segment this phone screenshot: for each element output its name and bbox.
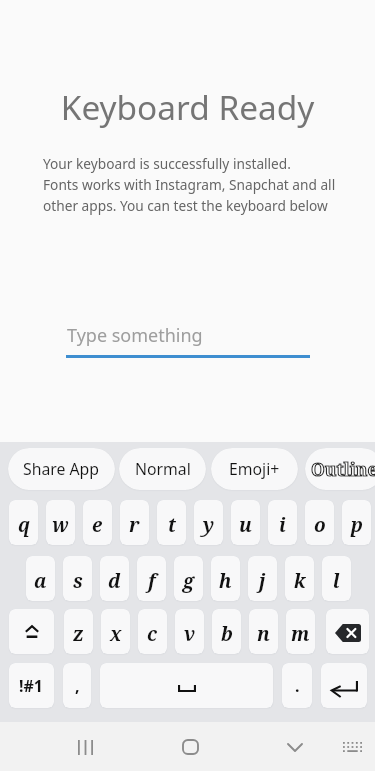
- staticText: Type something: [67, 323, 203, 348]
- button[interactable]: k: [285, 556, 314, 601]
- staticText: h: [219, 568, 232, 594]
- staticText: Keyboard Ready: [0, 84, 375, 129]
- button[interactable]: f: [137, 556, 166, 601]
- staticText: f: [148, 568, 156, 594]
- staticText: x: [110, 621, 122, 647]
- staticText: Outline: [311, 457, 375, 481]
- button[interactable]: h: [211, 556, 240, 601]
- staticText: .: [295, 675, 300, 697]
- button[interactable]: d: [100, 556, 129, 601]
- button[interactable]: Share App: [8, 448, 115, 490]
- button[interactable]: Hide keyboard: [271, 722, 319, 771]
- button[interactable]: Shift: [9, 609, 54, 654]
- staticText: p: [351, 512, 363, 538]
- button[interactable]: a: [26, 556, 55, 601]
- staticText: Normal: [135, 458, 191, 480]
- button[interactable]: v: [175, 609, 204, 654]
- staticText: Outline: [311, 457, 375, 481]
- staticText: e: [92, 512, 103, 538]
- button[interactable]: Space: [100, 663, 273, 708]
- button[interactable]: y: [194, 500, 223, 545]
- staticText: !#1: [19, 675, 44, 697]
- button[interactable]: Normal: [119, 448, 206, 490]
- staticText: l: [333, 568, 340, 594]
- button[interactable]: p: [342, 500, 371, 545]
- staticText: ,: [75, 675, 80, 697]
- staticText: n: [257, 621, 270, 647]
- button[interactable]: Home: [166, 722, 214, 771]
- staticText: j: [259, 568, 266, 594]
- button[interactable]: u: [231, 500, 260, 545]
- button[interactable]: j: [248, 556, 277, 601]
- button[interactable]: c: [138, 609, 167, 654]
- staticText: y: [203, 512, 215, 538]
- staticText: g: [183, 568, 195, 594]
- button[interactable]: i: [268, 500, 297, 545]
- button[interactable]: Recents: [61, 722, 109, 771]
- button[interactable]: Backspace: [326, 609, 369, 654]
- staticText: d: [108, 568, 121, 594]
- staticText: t: [168, 512, 176, 538]
- button[interactable]: z: [64, 609, 93, 654]
- staticText: b: [221, 621, 233, 647]
- button[interactable]: !#1: [9, 663, 54, 708]
- button[interactable]: .: [282, 663, 312, 708]
- staticText: z: [73, 621, 84, 647]
- button[interactable]: Enter: [321, 663, 367, 708]
- staticText: r: [129, 512, 140, 538]
- button[interactable]: m: [286, 609, 315, 654]
- staticText: s: [73, 568, 83, 594]
- staticText: k: [294, 568, 306, 594]
- button[interactable]: Outline: [305, 448, 375, 490]
- button[interactable]: n: [249, 609, 278, 654]
- staticText: c: [147, 621, 158, 647]
- button[interactable]: e: [83, 500, 112, 545]
- button[interactable]: b: [212, 609, 241, 654]
- staticText: u: [239, 512, 252, 538]
- staticText: o: [314, 512, 326, 538]
- button[interactable]: s: [63, 556, 92, 601]
- button[interactable]: g: [174, 556, 203, 601]
- button[interactable]: l: [322, 556, 351, 601]
- button[interactable]: Emoji+: [211, 448, 298, 490]
- button[interactable]: Switch keyboard: [328, 722, 375, 771]
- staticText: i: [279, 512, 286, 538]
- staticText: m: [291, 621, 310, 647]
- button[interactable]: t: [157, 500, 186, 545]
- button[interactable]: w: [46, 500, 75, 545]
- button[interactable]: x: [101, 609, 130, 654]
- staticText: q: [18, 512, 30, 538]
- staticText: v: [184, 621, 196, 647]
- button[interactable]: o: [305, 500, 334, 545]
- staticText: Emoji+: [229, 458, 280, 480]
- staticText: w: [52, 512, 69, 538]
- button[interactable]: ,: [63, 663, 91, 708]
- staticText: a: [34, 568, 47, 594]
- staticText: Share App: [23, 458, 100, 480]
- staticText: Your keyboard is successfully installed.…: [43, 154, 336, 215]
- button[interactable]: r: [120, 500, 149, 545]
- button[interactable]: q: [9, 500, 38, 545]
